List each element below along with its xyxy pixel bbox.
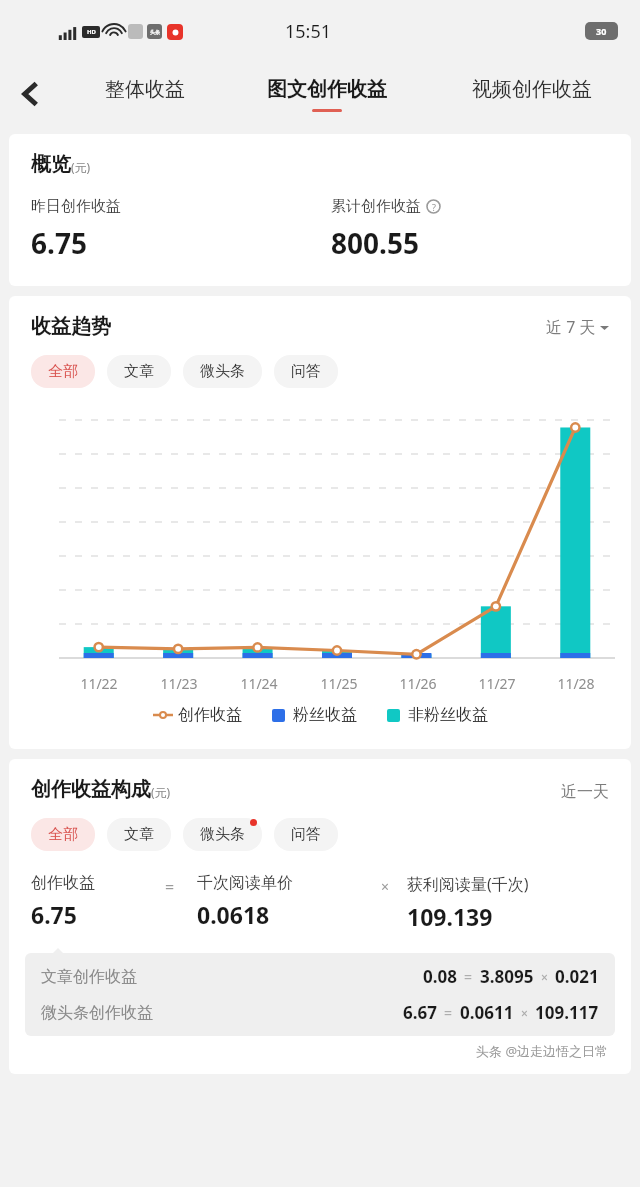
staticText: 创作收益 <box>31 873 95 893</box>
staticText: 3.8095 <box>480 965 534 988</box>
staticText: 创作收益 <box>178 705 242 725</box>
button[interactable]: 图文创作收益 <box>224 62 429 126</box>
staticText: 文章 <box>124 362 154 381</box>
staticText: 11/26 <box>399 674 437 693</box>
staticText: 创作收益构成 <box>31 777 151 802</box>
staticText: 0.08 <box>423 965 457 988</box>
staticText: 问答 <box>291 825 321 844</box>
staticText: 非粉丝收益 <box>408 705 488 725</box>
button[interactable]: 全部 <box>31 355 95 388</box>
staticText: 11/24 <box>240 674 278 693</box>
staticText: 11/22 <box>80 674 118 693</box>
staticText: 6.75 <box>31 899 77 930</box>
staticText: HD <box>87 28 96 36</box>
staticText: 微头条 <box>200 825 245 844</box>
staticText: = <box>444 1003 453 1022</box>
staticText: 概览 <box>31 152 71 177</box>
staticText: 全部 <box>48 825 78 844</box>
staticText: 微头条 <box>200 362 245 381</box>
staticText: 109.117 <box>535 1001 599 1024</box>
staticText: 0.0618 <box>197 899 270 930</box>
staticText: 视频创作收益 <box>472 77 592 102</box>
staticText: 文章 <box>124 825 154 844</box>
button[interactable]: 文章 <box>107 818 171 851</box>
staticText: × <box>541 969 548 985</box>
button[interactable]: 全部 <box>31 818 95 851</box>
staticText: 0.0611 <box>460 1001 514 1024</box>
staticText: 11/25 <box>320 674 358 693</box>
staticText: 近一天 <box>561 782 609 802</box>
button[interactable]: 问答 <box>274 355 338 388</box>
staticText: 获利阅读量(千次) <box>407 873 529 895</box>
staticText: 图文创作收益 <box>267 77 387 102</box>
staticText: = <box>464 967 473 986</box>
staticText: 问答 <box>291 362 321 381</box>
button[interactable]: 近一天 <box>561 782 609 802</box>
staticText: 800.55 <box>331 224 419 262</box>
staticText: 6.75 <box>31 224 87 262</box>
staticText: × <box>521 1005 528 1021</box>
staticText: 头条 <box>150 29 160 35</box>
staticText: × <box>381 877 390 896</box>
staticText: 全部 <box>48 362 78 381</box>
button[interactable]: 微头条 <box>183 818 262 851</box>
button[interactable]: 文章 <box>107 355 171 388</box>
staticText: ? <box>432 201 436 213</box>
staticText: 6.67 <box>403 1001 437 1024</box>
button[interactable]: 近 7 天 <box>546 316 609 338</box>
staticText: 11/28 <box>557 674 595 693</box>
button[interactable]: Help <box>426 199 441 214</box>
button[interactable]: Back <box>6 70 54 118</box>
staticText: 11/27 <box>478 674 516 693</box>
staticText: 30 <box>596 25 607 37</box>
staticText: 11/23 <box>160 674 198 693</box>
staticText: 整体收益 <box>105 77 185 102</box>
staticText: (元) <box>71 159 91 175</box>
staticText: 千次阅读单价 <box>197 873 293 893</box>
staticText: 0.021 <box>555 965 599 988</box>
staticText: 近 7 天 <box>546 316 596 338</box>
button[interactable]: 问答 <box>274 818 338 851</box>
staticText: 109.139 <box>407 901 493 932</box>
staticText: 微头条创作收益 <box>41 1003 153 1023</box>
staticText: 累计创作收益 <box>331 197 421 216</box>
staticText: 粉丝收益 <box>293 705 357 725</box>
staticText: 头条 @边走边悟之日常 <box>476 1042 609 1060</box>
button[interactable]: 整体收益 <box>66 62 224 126</box>
staticText: 收益趋势 <box>31 314 111 339</box>
staticText: (元) <box>151 784 171 800</box>
button[interactable]: 微头条 <box>183 355 262 388</box>
staticText: = <box>165 876 175 898</box>
staticText: 昨日创作收益 <box>31 197 121 216</box>
staticText: 15:51 <box>285 19 332 44</box>
button[interactable]: 视频创作收益 <box>429 62 634 126</box>
staticText: 文章创作收益 <box>41 967 137 987</box>
